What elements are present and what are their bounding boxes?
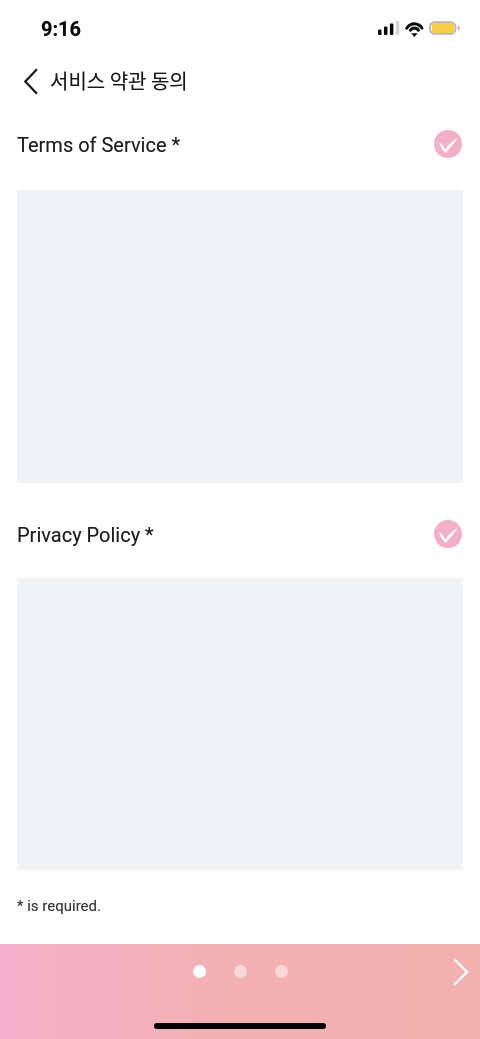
staticText: * is required. [17,897,101,915]
button[interactable]: Back [9,59,51,103]
button[interactable]: Agree to Privacy Policy * [434,520,462,548]
staticText: 서비스 약관 동의 [50,66,188,95]
staticText: Privacy Policy * [17,523,154,546]
staticText: Privacy Policy * [17,523,154,546]
staticText: 서비스 약관 동의 [50,66,188,95]
staticText: Terms of Service * [17,133,181,156]
button[interactable]: Next [439,950,480,994]
staticText: 9:16 [41,17,82,40]
staticText: 9:16 [41,17,82,40]
staticText: * is required. [17,897,101,915]
button[interactable]: Agree to Terms of Service * [434,130,462,158]
staticText: Terms of Service * [17,133,181,156]
